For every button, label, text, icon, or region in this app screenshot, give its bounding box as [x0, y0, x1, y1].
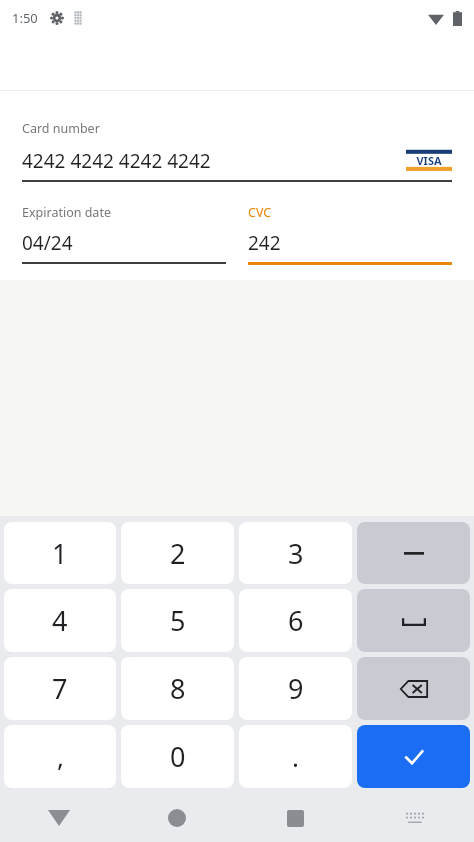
- button[interactable]: Switch keyboard: [355, 794, 474, 842]
- staticText: 8: [170, 670, 186, 707]
- staticText: ,: [57, 739, 64, 774]
- button[interactable]: Enter: [357, 725, 470, 788]
- staticText: VISA: [416, 153, 442, 168]
- staticText: 3: [288, 535, 304, 572]
- button[interactable]: 3: [239, 522, 352, 584]
- staticText: 4242 4242 4242 4242: [22, 148, 406, 174]
- staticText: 6: [288, 602, 304, 639]
- button[interactable]: 2: [121, 522, 234, 584]
- staticText: 1:50: [12, 9, 38, 27]
- staticText: 5: [170, 602, 186, 639]
- staticText: CVC: [248, 204, 272, 221]
- staticText: 242: [248, 230, 281, 256]
- staticText: 04/24: [22, 230, 73, 256]
- button[interactable]: 6: [239, 589, 352, 652]
- button[interactable]: .: [239, 725, 352, 788]
- staticText: 9: [288, 670, 304, 707]
- staticText: Card number: [22, 120, 100, 137]
- button[interactable]: 0: [121, 725, 234, 788]
- button[interactable]: 5: [121, 589, 234, 652]
- button[interactable]: 4: [4, 589, 116, 652]
- staticText: 1: [52, 535, 68, 572]
- button[interactable]: Home: [118, 794, 236, 842]
- button[interactable]: 1: [4, 522, 116, 584]
- button[interactable]: 8: [121, 657, 234, 720]
- staticText: 7: [52, 670, 68, 707]
- staticText: 0: [170, 738, 186, 775]
- staticText: Expiration date: [22, 204, 111, 221]
- staticText: 2: [170, 535, 186, 572]
- button[interactable]: ,: [4, 725, 116, 788]
- button[interactable]: 9: [239, 657, 352, 720]
- staticText: 4: [52, 602, 68, 639]
- button[interactable]: 7: [4, 657, 116, 720]
- button[interactable]: Recent apps: [236, 794, 355, 842]
- button[interactable]: Dash: [357, 522, 470, 584]
- button[interactable]: Space: [357, 589, 470, 652]
- button[interactable]: Backspace: [357, 657, 470, 720]
- staticText: .: [292, 739, 299, 774]
- button[interactable]: Back: [0, 794, 118, 842]
